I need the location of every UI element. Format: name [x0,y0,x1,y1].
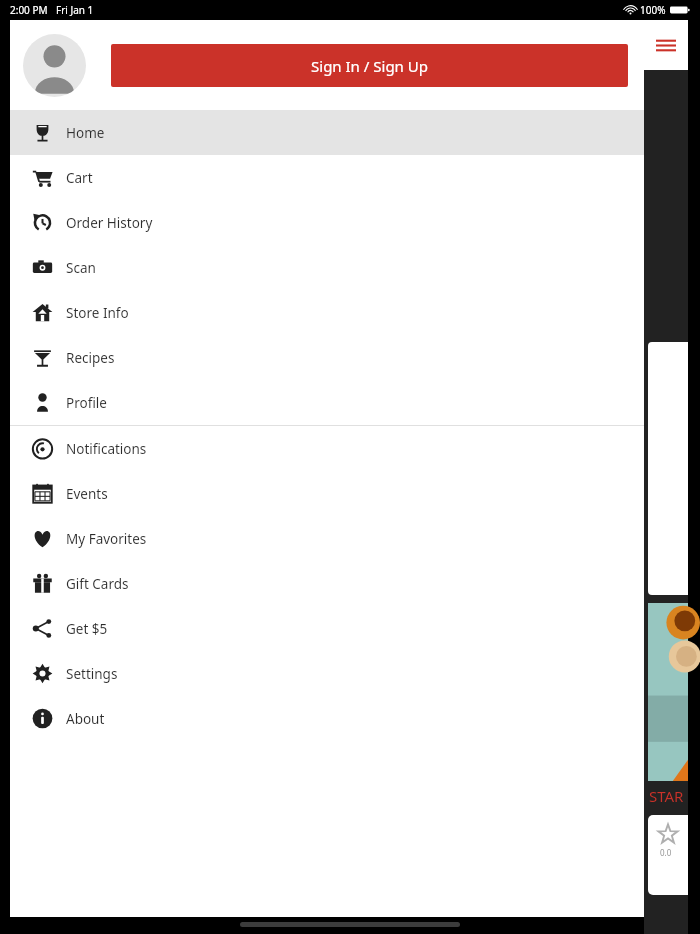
button[interactable]: Scan [10,245,644,290]
button[interactable]: About [10,696,644,741]
staticText: Cart [66,169,93,187]
staticText: Store Info [66,304,129,322]
button[interactable]: Recipes [10,335,644,380]
staticText: 0.0 [660,847,672,858]
staticText: Recipes [66,349,115,367]
button[interactable]: Sign In / Sign Up [111,44,628,87]
staticText: Notifications [66,440,147,458]
button[interactable]: Home [10,110,644,155]
staticText: Order History [66,214,153,232]
staticText: Profile [66,394,107,412]
button[interactable]: Card [648,342,688,595]
button[interactable]: Cart [10,155,644,200]
staticText: Sign In / Sign Up [311,56,428,76]
staticText: About [66,710,105,728]
staticText: Home [66,124,105,142]
button[interactable]: Events [10,471,644,516]
button[interactable]: Profile picture [23,34,86,97]
button[interactable]: Profile [10,380,644,425]
button[interactable]: Rating [648,815,688,895]
staticText: 2:00 PM [10,3,48,17]
button[interactable]: My Favorites [10,516,644,561]
button[interactable]: Order History [10,200,644,245]
staticText: Get $5 [66,620,108,638]
button[interactable]: Notifications [10,426,644,471]
staticText: My Favorites [66,530,147,548]
staticText: Events [66,485,108,503]
staticText: 100% [640,3,666,17]
button[interactable]: Open menu [644,20,688,70]
button[interactable]: Gift Cards [10,561,644,606]
staticText: STAR [649,786,684,806]
staticText: Settings [66,665,118,683]
button[interactable]: Get $5 [10,606,644,651]
button[interactable]: Featured image [648,603,688,781]
staticText: Gift Cards [66,575,129,593]
staticText: Fri Jan 1 [56,3,94,17]
button[interactable]: Settings [10,651,644,696]
staticText: Scan [66,259,96,277]
button[interactable]: Store Info [10,290,644,335]
